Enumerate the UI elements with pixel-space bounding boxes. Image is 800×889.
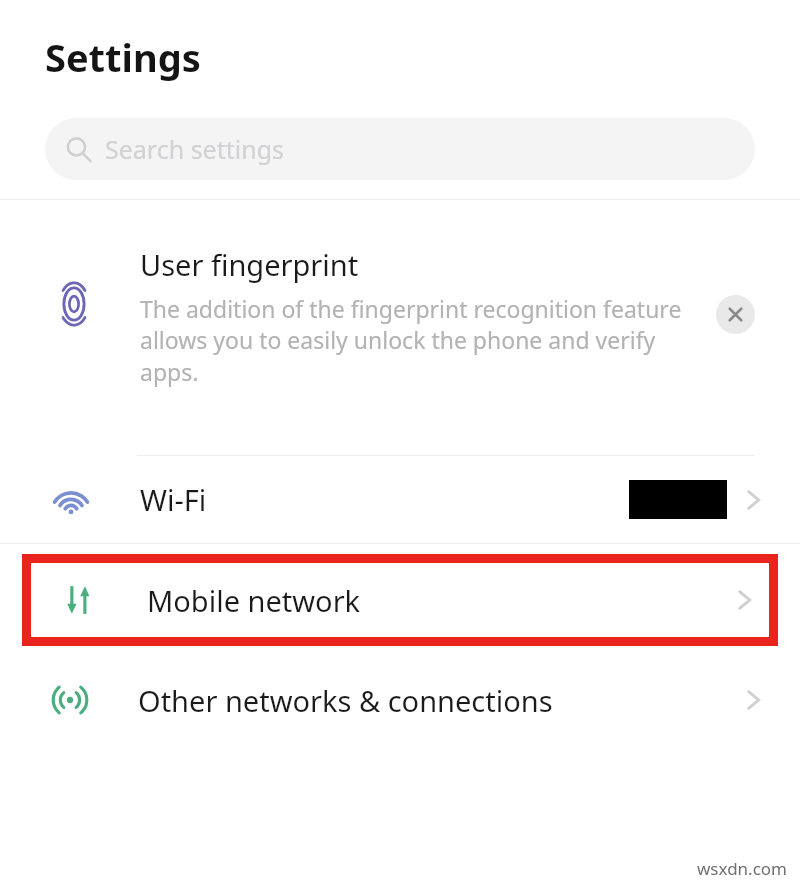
button[interactable]: Dismiss [716,295,755,334]
staticText: Other networks & connections [138,681,553,720]
staticText: Wi-Fi [140,480,207,519]
button[interactable]: Other networks & connections [0,656,800,744]
button[interactable]: Search settings [45,118,755,180]
staticText: The addition of the fingerprint recognit… [140,293,710,388]
staticText: Settings [45,31,201,83]
staticText: Search settings [105,132,285,166]
staticText: Mobile network [147,581,361,620]
button[interactable]: Wi-Fi [0,456,800,543]
button[interactable]: Mobile network [31,563,769,637]
staticText: wsxdn.com [697,857,788,880]
staticText: User fingerprint [140,245,359,284]
